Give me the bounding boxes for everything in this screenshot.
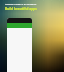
staticText: Material Design 3 in Compose	[5, 3, 37, 6]
staticText: Build beautiful apps	[5, 7, 37, 11]
